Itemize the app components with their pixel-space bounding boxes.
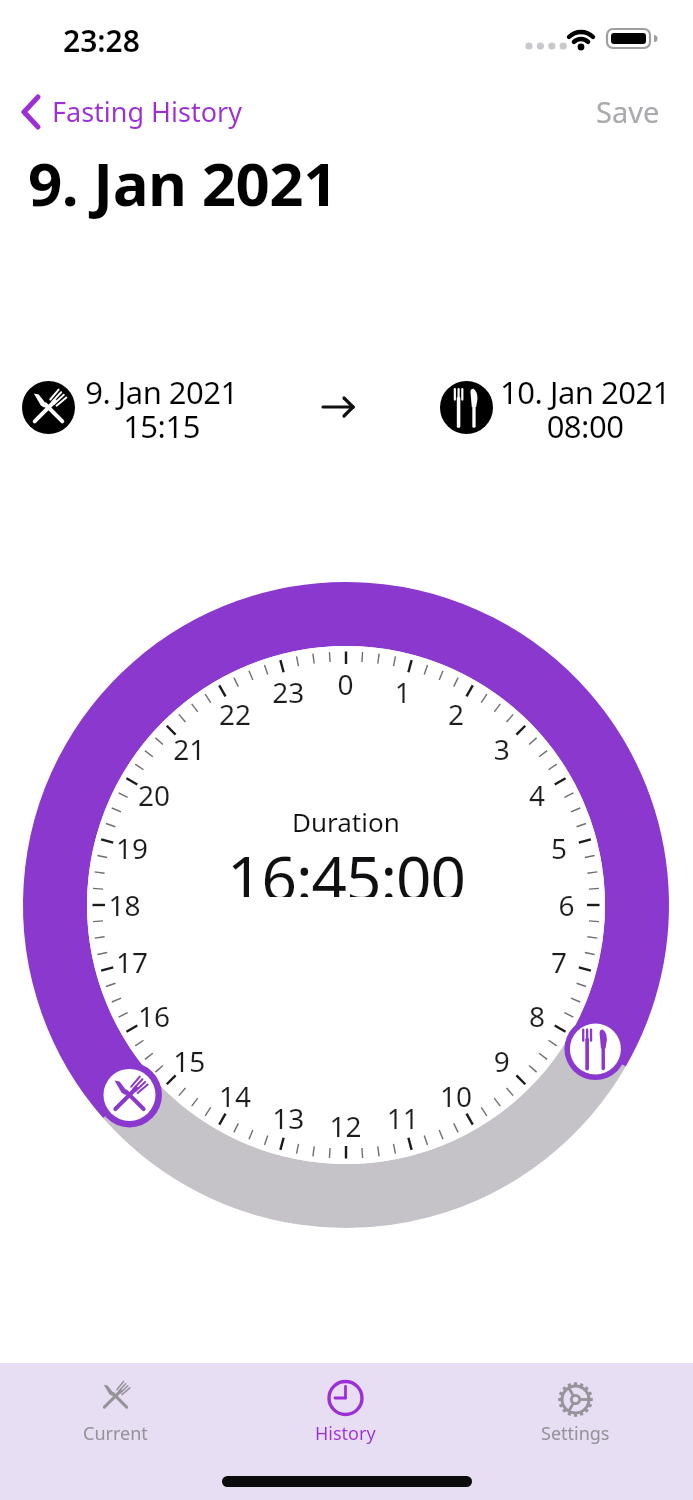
button[interactable] <box>97 1062 162 1127</box>
staticText: 23:28 <box>63 20 140 60</box>
staticText: Settings <box>541 1421 610 1446</box>
staticText: 16:45:00 <box>227 835 466 897</box>
button[interactable]: Fasting History <box>14 88 254 134</box>
staticText: History <box>315 1421 376 1446</box>
staticText: Current <box>83 1421 148 1446</box>
button[interactable] <box>0 1363 231 1463</box>
staticText: Fasting History <box>52 93 243 130</box>
button[interactable] <box>231 1363 462 1463</box>
staticText: 9. Jan 2021 <box>28 142 337 224</box>
staticText: 10. Jan 2021 08:00 <box>500 371 670 439</box>
button[interactable] <box>462 1363 693 1463</box>
button[interactable] <box>563 1017 627 1081</box>
staticText: Duration <box>292 804 400 836</box>
staticText: 9. Jan 2021 15:15 <box>85 371 238 439</box>
staticText: Save <box>596 92 660 131</box>
button[interactable]: Save <box>550 88 660 134</box>
